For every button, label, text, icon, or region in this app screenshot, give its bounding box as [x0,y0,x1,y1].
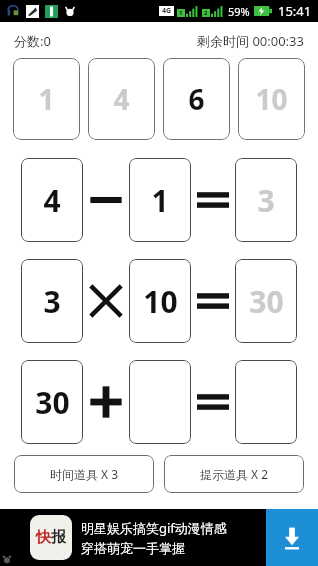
button[interactable]: Empty card [129,360,191,444]
staticText: 10 [255,80,288,118]
staticText: 1 [151,180,169,221]
staticText: 30 [35,382,70,423]
button[interactable]: Card 1 [129,158,191,242]
button[interactable]: Card 4 [88,58,155,140]
button[interactable]: Card 30 [235,259,297,343]
button[interactable]: Card 4 [21,158,83,242]
button[interactable]: Download [266,509,318,566]
staticText: 穿搭萌宠一手掌握 [81,540,185,556]
staticText: 明星娱乐搞笑gif动漫情感 [81,519,227,537]
staticText: 剩余时间 00:00:33 [197,32,304,50]
staticText: 快 [36,528,51,547]
button[interactable]: Card 10 [238,58,305,140]
button[interactable]: 时间道具 X 3 [14,455,154,493]
button[interactable]: Card 3 [235,158,297,242]
staticText: 59% [228,4,250,19]
staticText: 10 [143,281,178,322]
staticText: 时间道具 X 3 [50,466,119,482]
button[interactable]: Ad icon [30,515,72,560]
staticText: 1 [179,9,183,17]
button[interactable]: Card 1 [13,58,80,140]
button[interactable]: Card 3 [21,259,83,343]
staticText: 15:41 [278,2,312,20]
staticText: 4G [162,6,172,16]
staticText: 1 [38,80,55,118]
staticText: 3 [257,180,275,221]
staticText: 4 [113,80,130,118]
button[interactable]: 提示道具 X 2 [164,455,304,493]
button[interactable]: Card 30 [21,360,83,444]
staticText: 6 [188,80,205,118]
staticText: 2 [204,9,208,17]
staticText: 3 [43,281,61,322]
staticText: 4 [43,180,61,221]
button[interactable]: Card 10 [129,259,191,343]
staticText: 报 [51,528,66,547]
button[interactable]: Card 6 [163,58,230,140]
staticText: 30 [249,281,284,322]
staticText: 提示道具 X 2 [200,466,269,482]
staticText: 分数:0 [14,32,51,50]
button[interactable]: Empty card [235,360,297,444]
